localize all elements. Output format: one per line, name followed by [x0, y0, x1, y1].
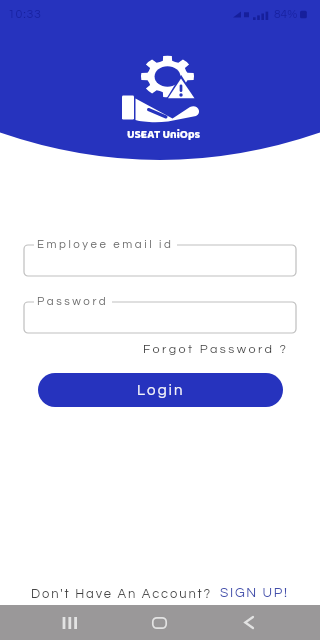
button[interactable]: Recent apps — [24, 605, 114, 640]
staticText: Password — [37, 296, 109, 308]
button[interactable] — [24, 245, 296, 276]
button[interactable]: SIGN UP! — [220, 586, 289, 600]
staticText: Login — [137, 383, 185, 398]
staticText: Employee email id — [37, 239, 174, 251]
staticText: 84% — [274, 8, 298, 20]
staticText: USEAT UniOps — [127, 126, 201, 144]
button[interactable]: Home — [114, 605, 204, 640]
button[interactable]: Login — [38, 373, 283, 407]
staticText: Don't Have An Account? — [31, 587, 213, 600]
button[interactable] — [24, 302, 296, 333]
button[interactable]: Forgot Password ? — [143, 343, 289, 356]
button[interactable]: Back — [204, 605, 294, 640]
staticText: 10:33 — [8, 8, 42, 21]
